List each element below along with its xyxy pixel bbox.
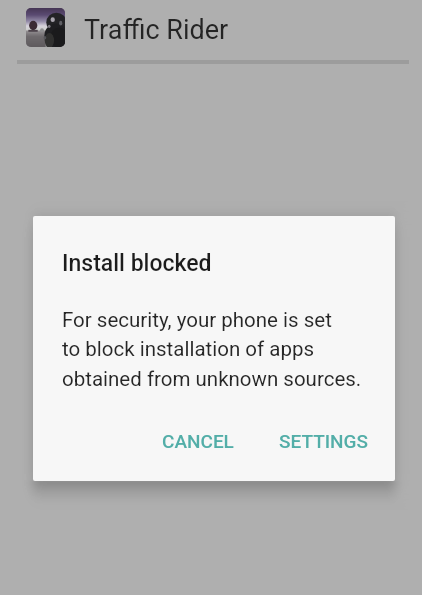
button[interactable]: SETTINGS [267, 422, 381, 460]
other: Traffic Rider app icon [26, 8, 65, 47]
staticText: CANCEL [162, 430, 234, 452]
staticText: Install blocked [62, 250, 212, 277]
button[interactable]: CANCEL [150, 422, 246, 460]
button[interactable]: Traffic Rider app icon [0, 0, 422, 60]
staticText: SETTINGS [279, 430, 369, 452]
staticText: Traffic Rider [84, 14, 229, 46]
staticText: For security, your phone is set to block… [62, 308, 362, 391]
